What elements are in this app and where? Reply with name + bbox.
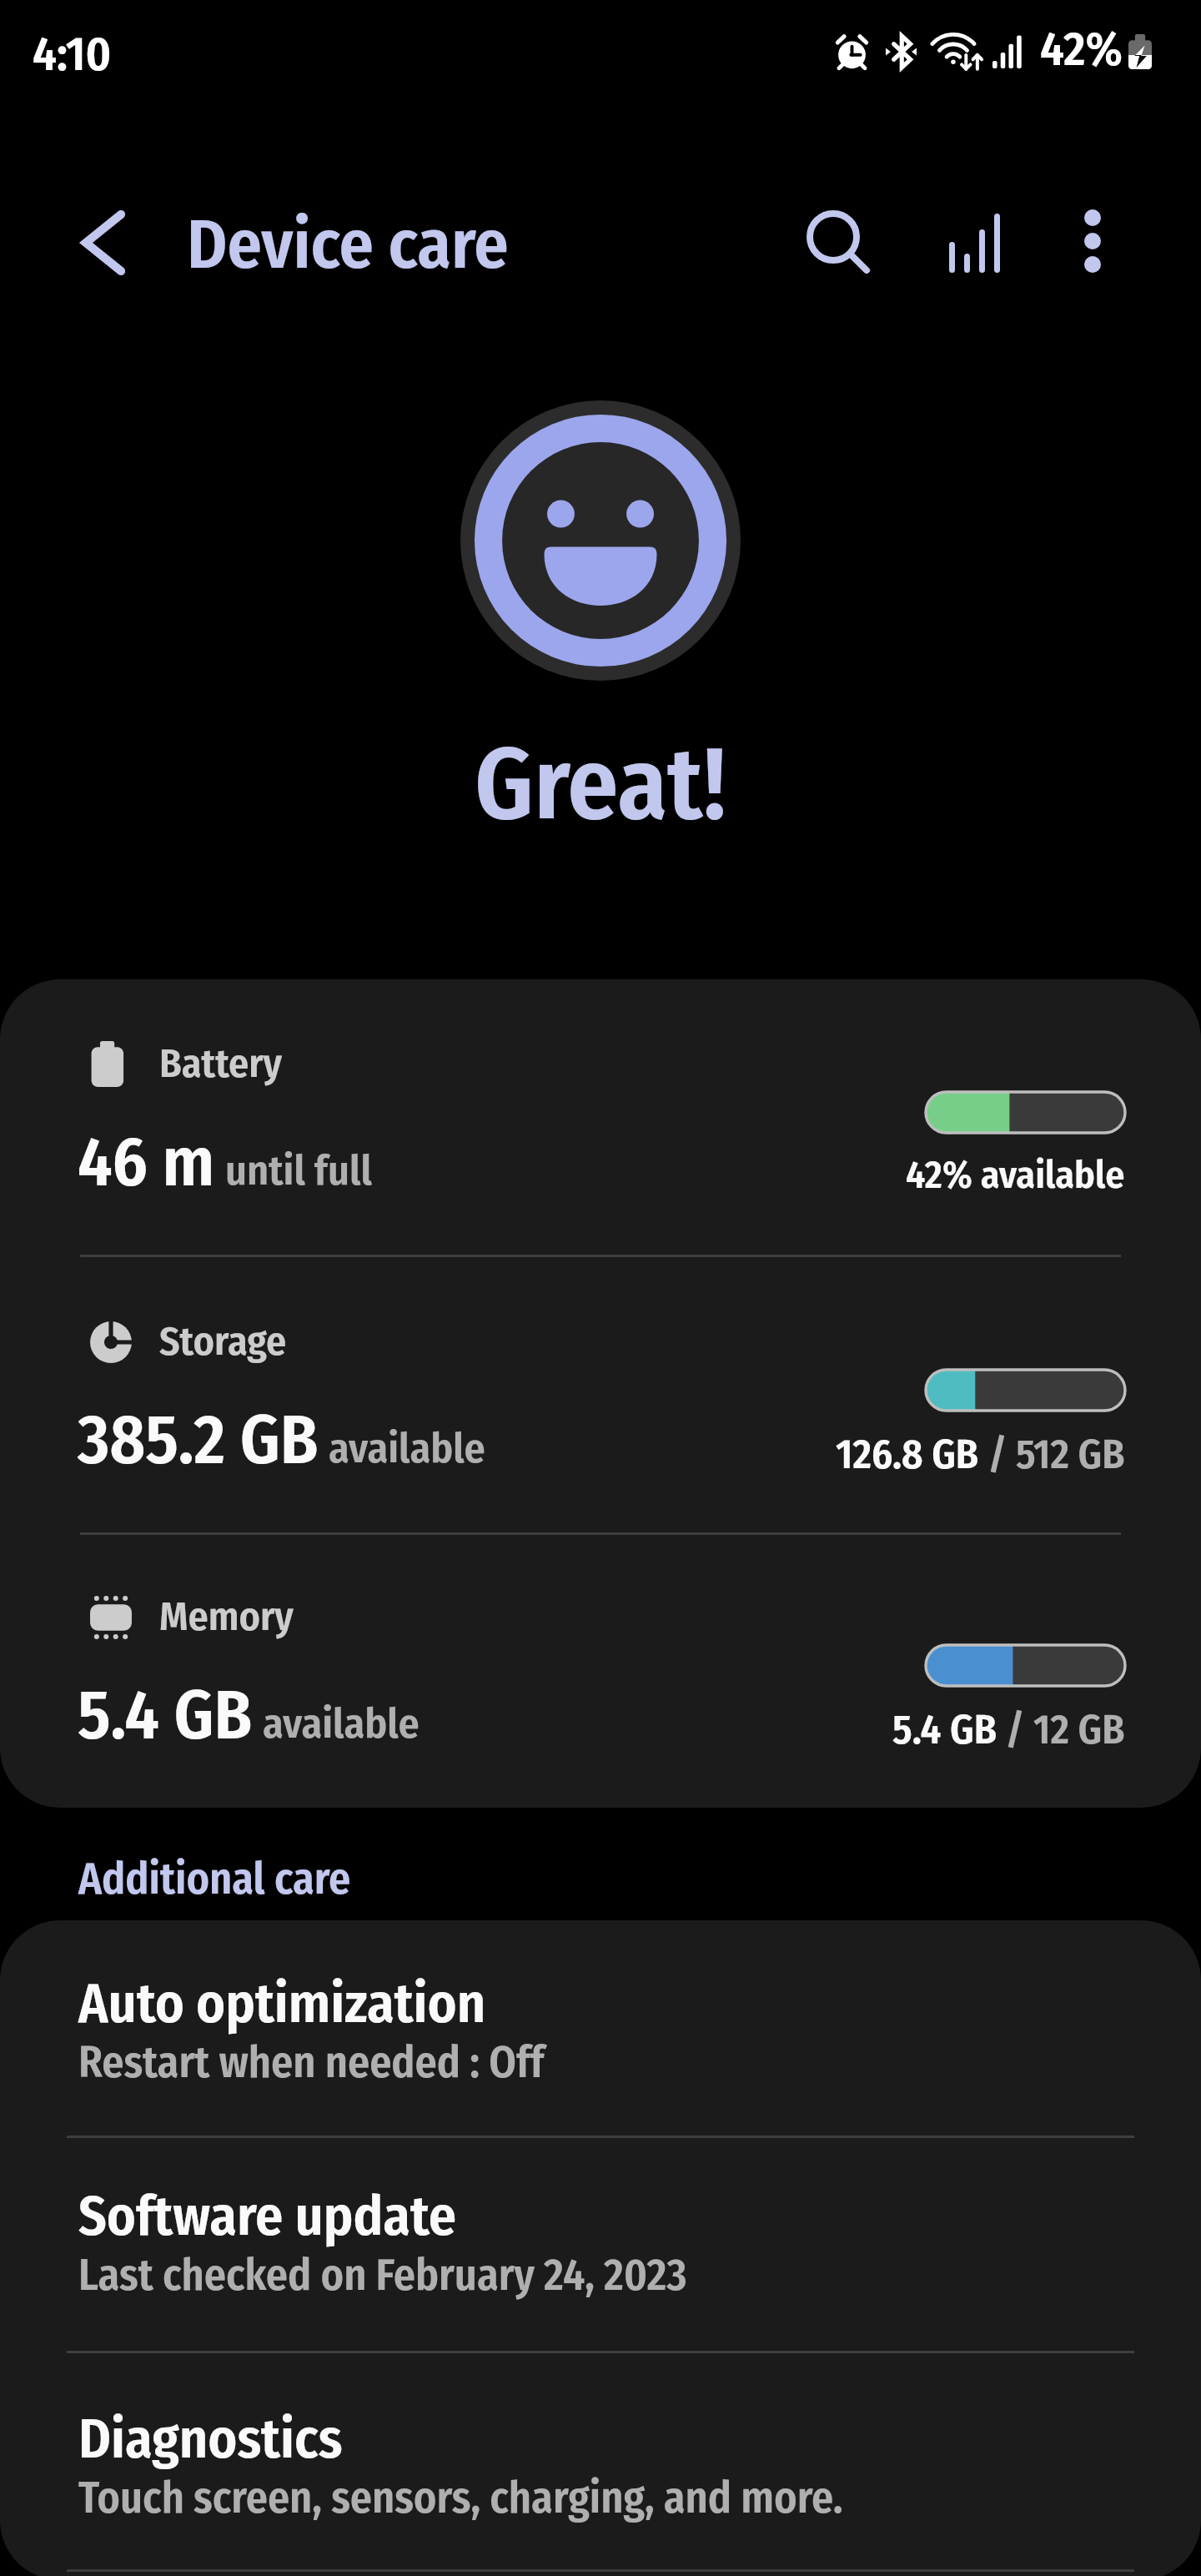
staticText: / 12 GB — [997, 1705, 1125, 1754]
button[interactable]: Back — [63, 203, 143, 283]
button[interactable]: Memory — [0, 1535, 1201, 1808]
staticText: 4:10 — [33, 26, 112, 83]
staticText: 46 m — [78, 1121, 215, 1203]
staticText: Battery — [159, 1039, 283, 1088]
button[interactable]: Diagnostics — [0, 2353, 1201, 2569]
button[interactable]: Usage statistics — [928, 197, 1020, 289]
button[interactable]: Search — [791, 195, 882, 287]
staticText: 42% available — [906, 1152, 1125, 1198]
staticText: available — [329, 1423, 485, 1473]
staticText: Storage — [159, 1317, 287, 1366]
staticText: Diagnostics — [78, 2406, 343, 2472]
staticText: Auto optimization — [78, 1970, 486, 2036]
staticText: Touch screen, sensors, charging, and mor… — [78, 2472, 843, 2523]
staticText: / 512 GB — [979, 1430, 1125, 1479]
button[interactable]: Storage — [0, 1257, 1201, 1532]
staticText: Great! — [475, 724, 726, 845]
button[interactable]: Software update — [0, 2138, 1201, 2351]
staticText: 385.2 GB — [78, 1399, 319, 1481]
button[interactable]: Auto optimization — [0, 1920, 1201, 2136]
staticText: Software update — [78, 2183, 457, 2249]
staticText: 126.8 GB — [836, 1430, 979, 1479]
button[interactable]: Battery — [0, 979, 1201, 1255]
staticText: Last checked on February 24, 2023 — [78, 2249, 687, 2301]
staticText: Additional care — [78, 1853, 351, 1904]
staticText: 5.4 GB — [78, 1674, 253, 1756]
staticText: 5.4 GB — [892, 1705, 997, 1754]
staticText: Restart when needed : Off — [78, 2036, 545, 2088]
staticText: Device care — [187, 204, 509, 285]
button[interactable]: More options — [1047, 195, 1138, 287]
staticText: 42% — [1040, 21, 1123, 78]
staticText: until full — [225, 1145, 372, 1195]
staticText: Memory — [159, 1592, 294, 1641]
staticText: available — [263, 1698, 420, 1748]
